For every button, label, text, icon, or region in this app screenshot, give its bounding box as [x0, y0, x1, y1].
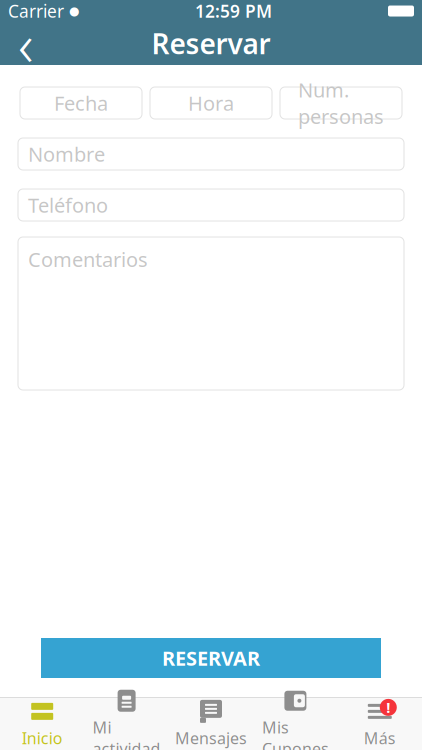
staticText: Comentarios	[28, 246, 148, 273]
staticText: !	[386, 698, 390, 717]
staticText: Hora	[188, 90, 234, 116]
staticText: Mensajes	[175, 727, 247, 749]
staticText: Num. personas	[298, 76, 384, 129]
staticText: Mis Cupones	[262, 717, 329, 750]
staticText: Teléfono	[28, 192, 108, 218]
staticText: Más	[364, 727, 396, 749]
button[interactable]: Mi actividad	[84, 698, 169, 750]
staticText: Fecha	[54, 90, 108, 116]
staticText: ●	[69, 4, 79, 18]
staticText: 12:59 PM	[195, 0, 272, 22]
staticText: RESERVAR	[162, 645, 260, 671]
button[interactable]: !	[338, 698, 422, 750]
staticText: Nombre	[28, 141, 105, 167]
button[interactable]: Back	[0, 22, 52, 65]
button[interactable]: Inicio	[0, 698, 84, 750]
staticText: Mi actividad	[93, 717, 161, 750]
button[interactable]: Mensajes	[169, 698, 253, 750]
button[interactable]: RESERVAR	[41, 638, 381, 678]
staticText: Inicio	[22, 727, 63, 749]
staticText: ‹	[18, 4, 34, 82]
staticText: Reservar	[151, 25, 270, 62]
button[interactable]: Mis Cupones	[253, 698, 338, 750]
staticText: Carrier	[8, 0, 64, 22]
